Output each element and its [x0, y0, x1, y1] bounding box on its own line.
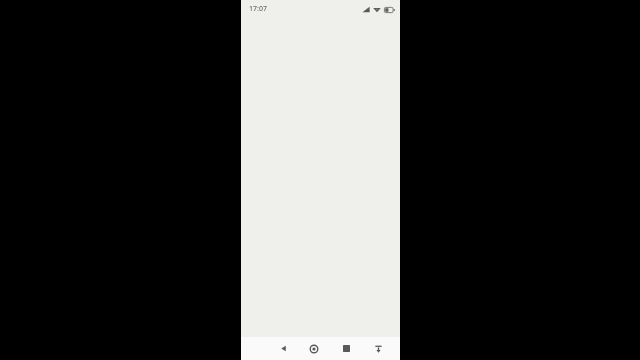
button[interactable]: Recent apps	[336, 337, 356, 360]
button[interactable]: Home	[304, 337, 324, 360]
button[interactable]: Back	[273, 337, 293, 360]
staticText: 17:07	[249, 4, 267, 14]
button[interactable]: Hide keyboard	[368, 337, 388, 360]
